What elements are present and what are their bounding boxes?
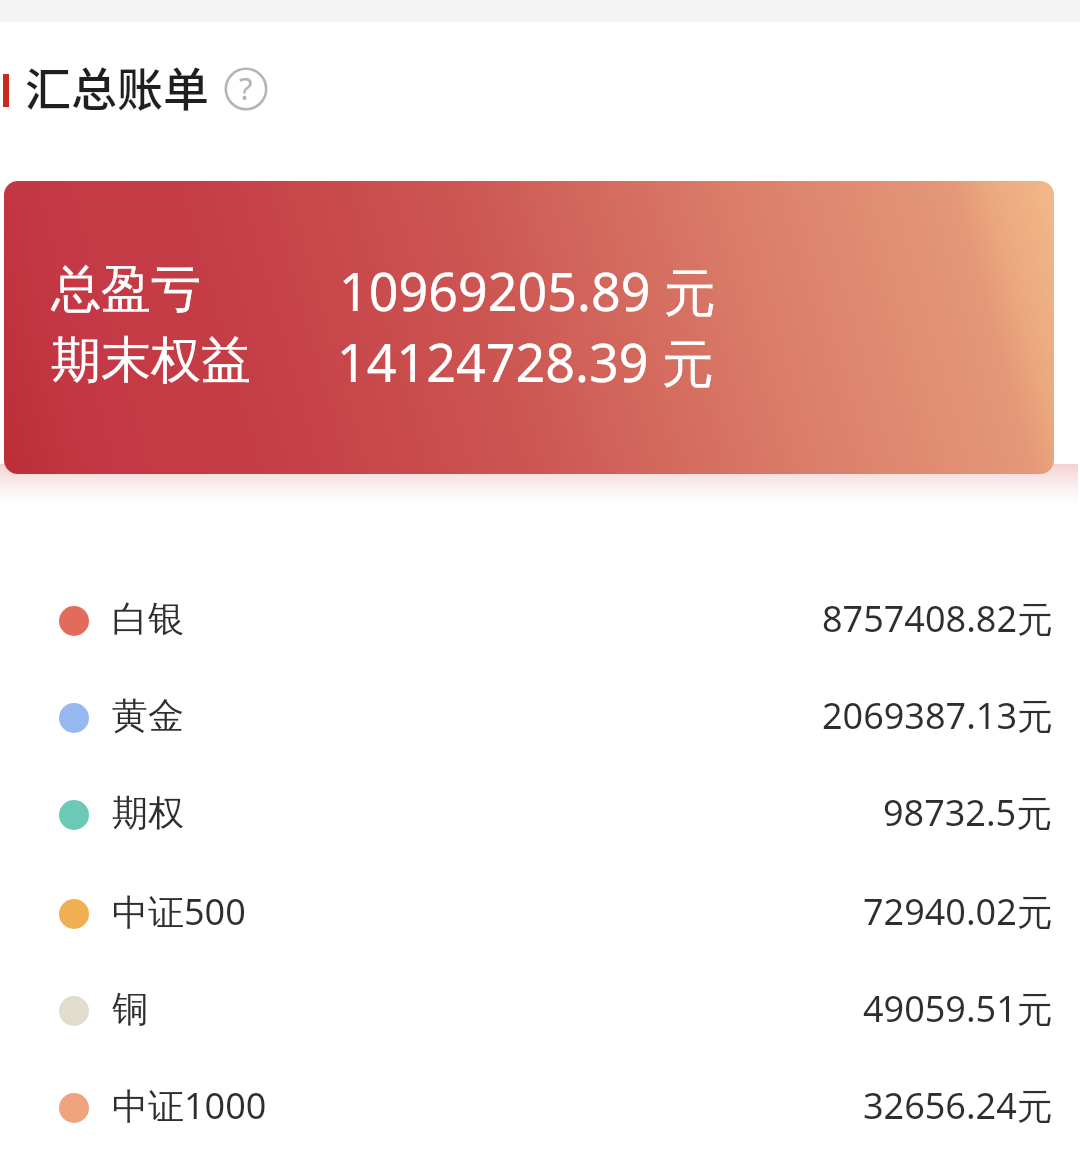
button[interactable]: 黄金 — [0, 669, 1080, 766]
staticText: 期末权益 — [51, 329, 251, 392]
staticText: 中证1000 — [112, 1081, 267, 1130]
staticText: 14124728.39 元 — [337, 326, 714, 397]
staticText: 中证500 — [112, 887, 246, 936]
staticText: 白银 — [112, 596, 184, 641]
button[interactable]: 铜 — [0, 962, 1080, 1059]
staticText: 32656.24元 — [863, 1081, 1053, 1130]
button[interactable]: 中证1000 — [0, 1059, 1080, 1156]
staticText: 铜 — [112, 986, 148, 1031]
staticText: 2069387.13元 — [822, 691, 1053, 740]
staticText: 49059.51元 — [863, 984, 1053, 1033]
button[interactable]: 总盈亏 — [4, 181, 1054, 474]
button[interactable]: Help — [224, 67, 268, 111]
button[interactable]: 白银 — [0, 572, 1080, 669]
staticText: 72940.02元 — [863, 887, 1053, 936]
staticText: 98732.5元 — [883, 788, 1053, 837]
staticText: 总盈亏 — [51, 258, 201, 321]
staticText: 10969205.89 元 — [339, 255, 716, 326]
button[interactable]: 期权 — [0, 766, 1080, 863]
staticText: 8757408.82元 — [822, 594, 1053, 643]
button[interactable]: 中证500 — [0, 865, 1080, 962]
staticText: 期权 — [112, 790, 184, 835]
staticText: 黄金 — [112, 693, 184, 738]
staticText: ? — [239, 67, 253, 109]
staticText: 汇总账单 — [25, 53, 209, 120]
